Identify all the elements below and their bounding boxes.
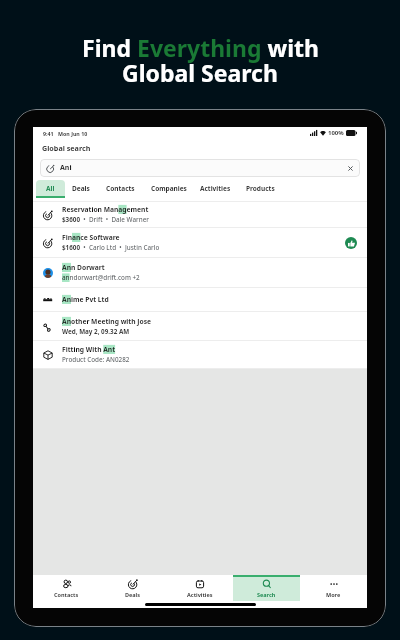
staticText: Another Meeting with Jose xyxy=(62,317,152,326)
staticText: Fitting With Ant xyxy=(62,345,116,354)
staticText: Mon Jun 10 xyxy=(58,130,88,137)
staticText: Ani xyxy=(60,163,72,173)
staticText: Global Search xyxy=(122,57,278,88)
button[interactable]: Anime Pvt Ltd xyxy=(33,288,367,311)
staticText: Finance Software xyxy=(62,233,120,242)
staticText: Product Code: AN0282 xyxy=(62,355,130,364)
button[interactable]: Reservation Management xyxy=(33,202,367,227)
staticText: Anime Pvt Ltd xyxy=(62,295,109,304)
button[interactable]: More xyxy=(300,575,367,601)
staticText: Companies xyxy=(151,184,187,193)
button[interactable]: Deals xyxy=(65,180,97,198)
staticText: $1600 • Carlo Ltd • Justin Carlo xyxy=(62,243,160,252)
button[interactable]: Contacts xyxy=(97,180,144,198)
staticText: $3600 • Drift • Dale Warner xyxy=(62,215,149,224)
staticText: Ann Dorwart xyxy=(62,263,105,272)
staticText: Find Everything with xyxy=(82,32,319,63)
button[interactable]: Activities xyxy=(166,575,233,601)
staticText: Global search xyxy=(42,143,91,153)
staticText: All xyxy=(46,184,55,193)
button[interactable]: Fitting With Ant xyxy=(33,341,367,368)
button[interactable]: Ann Dorwart xyxy=(33,258,367,287)
button[interactable]: Ani xyxy=(40,159,360,177)
button[interactable]: Another Meeting with Jose xyxy=(33,312,367,340)
button[interactable]: Contacts xyxy=(33,575,99,601)
button[interactable]: Search xyxy=(233,575,300,601)
button[interactable]: Products xyxy=(238,180,282,198)
button[interactable]: All xyxy=(36,180,65,198)
staticText: Wed, May 2, 09.32 AM xyxy=(62,327,130,336)
staticText: anndorwart@drift.com +2 xyxy=(62,273,140,282)
staticText: Activities xyxy=(187,591,213,598)
button[interactable]: Deals xyxy=(99,575,166,601)
staticText: Deals xyxy=(72,184,90,193)
staticText: 9:41 xyxy=(43,130,54,137)
button[interactable]: Finance Software xyxy=(33,228,367,257)
staticText: 100% xyxy=(328,129,344,137)
other: Clear xyxy=(347,165,354,172)
staticText: Reservation Management xyxy=(62,205,149,214)
staticText: More xyxy=(326,591,341,598)
button[interactable]: Activities xyxy=(193,180,238,198)
staticText: Search xyxy=(257,591,276,598)
staticText: Activities xyxy=(200,184,231,193)
staticText: Deals xyxy=(125,591,141,598)
staticText: Products xyxy=(246,184,275,193)
staticText: Contacts xyxy=(54,591,79,598)
staticText: Contacts xyxy=(106,184,135,193)
button[interactable]: Companies xyxy=(144,180,193,198)
